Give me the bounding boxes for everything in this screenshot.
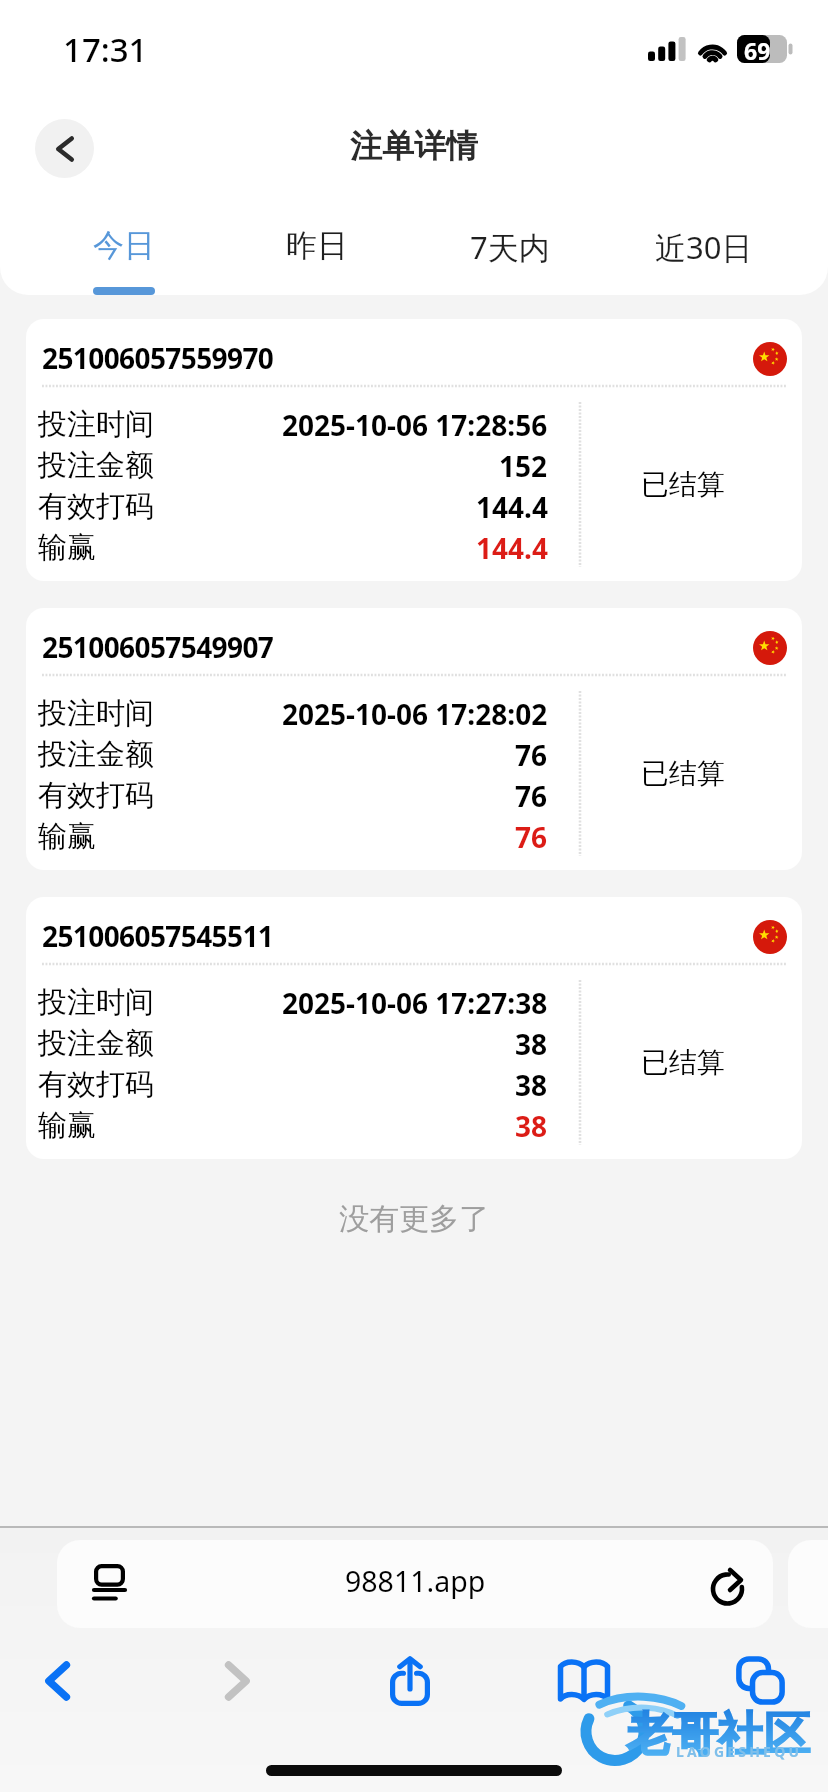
button[interactable]: 今日 xyxy=(27,200,220,295)
staticText: 76 xyxy=(515,818,548,856)
button[interactable]: Tabs xyxy=(702,1628,818,1733)
staticText: 2025-10-06 17:28:02 xyxy=(282,695,548,733)
staticText: 有效打码 xyxy=(38,488,154,525)
staticText: 7天内 xyxy=(470,226,550,268)
button[interactable]: Page settings xyxy=(57,1540,773,1628)
button[interactable]: Back xyxy=(35,119,94,178)
button[interactable]: 近30日 xyxy=(607,200,801,295)
staticText: 76 xyxy=(515,736,548,774)
staticText: 76 xyxy=(515,777,548,815)
button[interactable]: 251006057549907 xyxy=(26,608,802,870)
staticText: 17:31 xyxy=(63,27,148,72)
staticText: 投注金额 xyxy=(38,1025,154,1062)
button[interactable]: Forward xyxy=(179,1628,295,1733)
staticText: 已结算 xyxy=(641,467,725,502)
staticText: 98811.app xyxy=(345,1562,486,1601)
staticText: 38 xyxy=(515,1107,548,1145)
button[interactable]: Back xyxy=(0,1628,116,1733)
button[interactable]: 251006057545511 xyxy=(26,897,802,1159)
staticText: 2025-10-06 17:28:56 xyxy=(282,406,548,444)
staticText: 投注金额 xyxy=(38,736,154,773)
staticText: 已结算 xyxy=(641,1045,725,1080)
staticText: 没有更多了 xyxy=(339,1200,489,1238)
staticText: 投注时间 xyxy=(38,984,154,1021)
staticText: LAOGESHEQU xyxy=(676,1742,803,1761)
staticText: 38 xyxy=(515,1066,548,1104)
staticText: 38 xyxy=(515,1025,548,1063)
staticText: 老哥社区 xyxy=(626,1706,810,1764)
button[interactable]: 7天内 xyxy=(413,200,607,295)
staticText: 2025-10-06 17:27:38 xyxy=(282,984,548,1022)
button[interactable]: Page settings xyxy=(94,1564,125,1600)
button[interactable]: 251006057559970 xyxy=(26,319,802,581)
staticText: 251006057545511 xyxy=(42,917,274,955)
staticText: 今日 xyxy=(93,226,155,265)
staticText: 有效打码 xyxy=(38,777,154,814)
button[interactable]: Bookmarks xyxy=(526,1628,642,1733)
staticText: 投注时间 xyxy=(38,695,154,732)
staticText: 输赢 xyxy=(38,818,96,855)
staticText: 投注金额 xyxy=(38,447,154,484)
staticText: 69 xyxy=(744,35,771,63)
staticText: 近30日 xyxy=(655,226,753,268)
button[interactable]: 昨日 xyxy=(220,200,413,295)
staticText: 输赢 xyxy=(38,1107,96,1144)
staticText: 投注时间 xyxy=(38,406,154,443)
staticText: 251006057559970 xyxy=(42,339,274,377)
staticText: 144.4 xyxy=(476,529,548,567)
staticText: 144.4 xyxy=(476,488,548,526)
staticText: 已结算 xyxy=(641,756,725,791)
staticText: 有效打码 xyxy=(38,1066,154,1103)
staticText: 输赢 xyxy=(38,529,96,566)
staticText: 注单详情 xyxy=(350,126,478,166)
button[interactable]: Share xyxy=(352,1628,468,1733)
staticText: 251006057549907 xyxy=(42,628,274,666)
staticText: 昨日 xyxy=(286,226,348,265)
staticText: 152 xyxy=(499,447,548,485)
button[interactable]: Reload xyxy=(709,1559,751,1609)
